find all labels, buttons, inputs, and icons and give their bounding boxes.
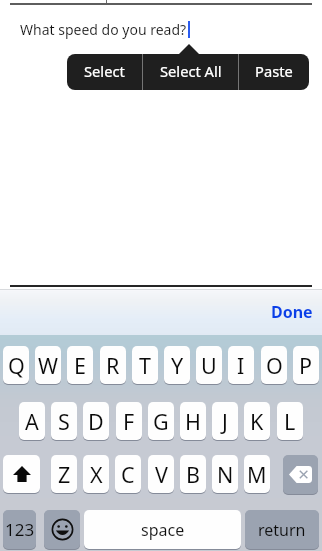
button[interactable]: N <box>212 455 238 493</box>
staticText: I <box>237 351 245 380</box>
button[interactable]: Emoji <box>44 510 80 549</box>
button[interactable]: D <box>83 402 109 440</box>
staticText: B <box>186 460 200 489</box>
staticText: L <box>284 407 296 436</box>
button[interactable]: K <box>244 402 270 440</box>
staticText: Z <box>58 460 71 489</box>
staticText: K <box>250 407 264 436</box>
button[interactable]: return <box>245 510 319 549</box>
button[interactable]: T <box>132 346 158 384</box>
staticText: return <box>258 519 306 541</box>
staticText: O <box>266 351 283 380</box>
button[interactable]: Y <box>164 346 190 384</box>
button[interactable]: U <box>196 346 222 384</box>
staticText: C <box>121 460 135 489</box>
staticText: space <box>141 519 185 541</box>
staticText: M <box>247 460 267 489</box>
staticText: W <box>38 351 58 380</box>
staticText: Y <box>171 351 184 380</box>
staticText: Q <box>8 351 25 380</box>
button[interactable]: Shift <box>3 455 40 493</box>
button[interactable]: M <box>244 455 270 493</box>
button[interactable]: X <box>83 455 109 493</box>
staticText: D <box>88 407 104 436</box>
staticText: N <box>217 460 234 489</box>
button[interactable]: Q <box>3 346 29 384</box>
button[interactable]: L <box>277 402 303 440</box>
staticText: Paste <box>255 61 293 81</box>
button[interactable]: W <box>35 346 61 384</box>
staticText: F <box>123 407 135 436</box>
staticText: E <box>74 351 86 380</box>
staticText: A <box>25 407 39 436</box>
button[interactable]: Done <box>262 293 322 331</box>
button[interactable]: P <box>293 346 319 384</box>
staticText: J <box>222 407 228 436</box>
button[interactable]: S <box>51 402 77 440</box>
staticText: H <box>185 407 201 436</box>
button[interactable]: I <box>228 346 254 384</box>
button[interactable]: H <box>180 402 206 440</box>
staticText: Select All <box>160 61 222 81</box>
button[interactable]: A <box>19 402 45 440</box>
staticText: 123 <box>5 518 35 541</box>
staticText: S <box>58 407 70 436</box>
button[interactable]: Paste <box>239 54 309 90</box>
button[interactable]: F <box>116 402 142 440</box>
button[interactable]: O <box>261 346 287 384</box>
button[interactable]: G <box>148 402 174 440</box>
button[interactable]: J <box>212 402 238 440</box>
staticText: U <box>201 351 217 380</box>
button[interactable]: Backspace <box>283 455 318 494</box>
button[interactable]: 123 <box>3 510 36 549</box>
button[interactable]: Select <box>67 54 142 90</box>
staticText: T <box>139 351 151 380</box>
button[interactable]: R <box>100 346 126 384</box>
staticText: R <box>106 351 120 380</box>
button[interactable]: E <box>67 346 93 384</box>
staticText: Done <box>271 301 313 323</box>
staticText: V <box>155 460 168 489</box>
button[interactable]: Select All <box>143 54 238 90</box>
staticText: X <box>90 460 103 489</box>
staticText: P <box>299 351 313 380</box>
staticText: What speed do you read? <box>20 20 187 39</box>
button[interactable]: space <box>84 510 241 549</box>
button[interactable]: B <box>180 455 206 493</box>
button[interactable]: Z <box>51 455 77 493</box>
staticText: Select <box>84 61 125 81</box>
staticText: G <box>153 407 169 436</box>
button[interactable]: C <box>115 455 141 493</box>
button[interactable]: V <box>148 455 174 493</box>
